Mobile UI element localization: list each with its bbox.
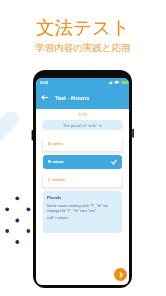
button[interactable]: C. wifees	[43, 173, 122, 187]
staticText: 1/10	[36, 112, 129, 117]
button[interactable]: B. wives	[43, 155, 122, 169]
staticText: 文法テスト	[36, 16, 130, 39]
button[interactable]: Back	[40, 93, 49, 102]
staticText: 9:30	[40, 80, 48, 85]
staticText: A. wifes	[48, 141, 63, 147]
staticText: 学習内容の実践と応用	[35, 42, 131, 54]
staticText: Test - Nouns	[55, 94, 90, 102]
staticText: C. wifees	[48, 177, 66, 183]
button[interactable]: A. wifes	[43, 137, 122, 151]
staticText: The plural of "wife" is	[63, 123, 102, 128]
staticText: Plurals	[47, 195, 62, 201]
staticText: calf → calves.	[47, 215, 69, 220]
button[interactable]: Next question	[114, 268, 127, 281]
staticText: B. wives	[48, 159, 64, 165]
staticText: Some nouns ending with "f", "fe" we chan…	[47, 203, 118, 213]
